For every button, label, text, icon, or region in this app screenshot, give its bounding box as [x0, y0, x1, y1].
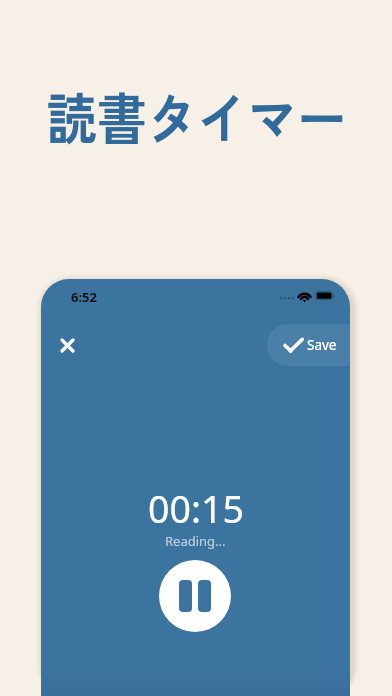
- button[interactable]: Pause: [159, 560, 231, 632]
- button[interactable]: Save: [267, 324, 350, 366]
- staticText: 読書タイマー: [47, 74, 347, 156]
- button[interactable]: Close: [49, 327, 85, 363]
- staticText: Save: [307, 336, 337, 354]
- staticText: 00:15: [148, 483, 244, 534]
- staticText: 6:52: [71, 288, 97, 306]
- staticText: Reading...: [165, 532, 226, 550]
